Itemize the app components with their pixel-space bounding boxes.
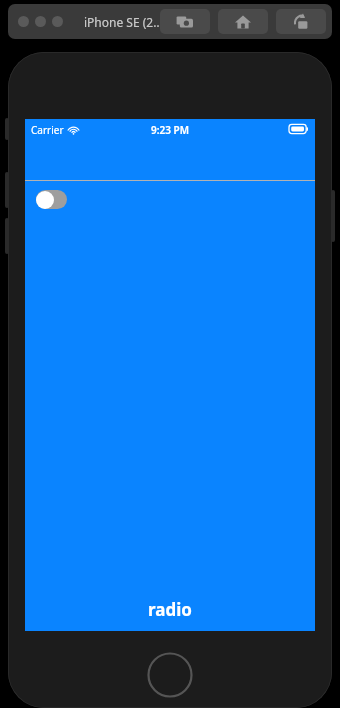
button[interactable]: Window control <box>18 16 29 27</box>
staticText: 9:23 PM <box>151 123 189 137</box>
button[interactable]: Rotate <box>276 9 326 34</box>
staticText: radio <box>148 598 192 621</box>
button[interactable]: Home button <box>147 652 193 698</box>
button[interactable]: Toggle switch, off <box>36 190 67 209</box>
button[interactable]: Window control <box>35 16 46 27</box>
button[interactable]: Window control <box>52 16 63 27</box>
button[interactable]: Home <box>218 9 268 34</box>
staticText: Carrier <box>31 123 64 137</box>
staticText: iPhone SE (2… <box>84 14 163 30</box>
button[interactable]: Screenshot <box>160 9 210 34</box>
